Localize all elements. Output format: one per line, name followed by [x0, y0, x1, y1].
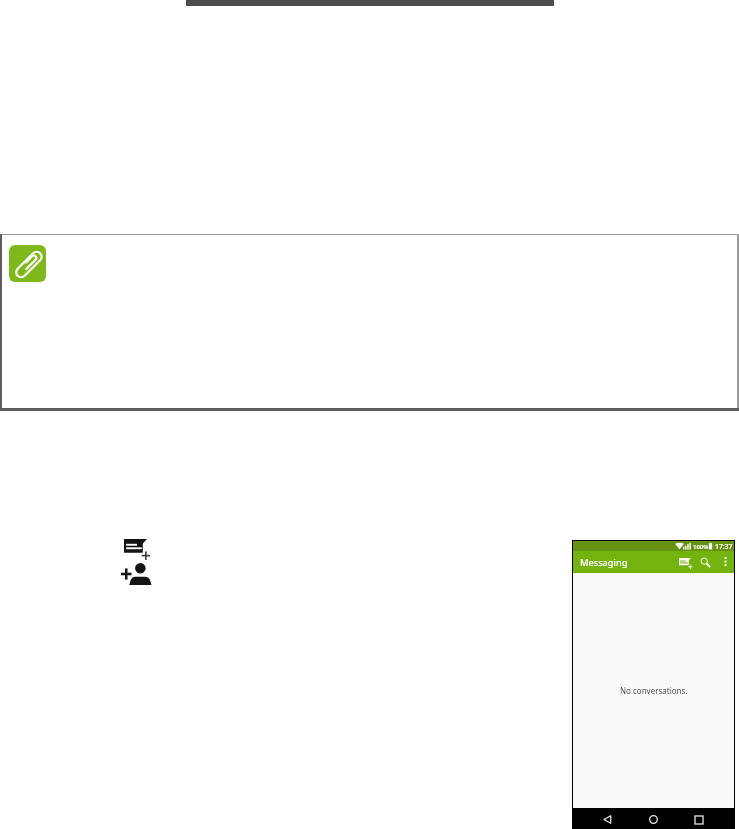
staticText: 17:37 — [715, 542, 733, 551]
staticText: Messaging — [580, 556, 628, 569]
button[interactable]: More options — [718, 554, 732, 568]
button[interactable]: Recents — [692, 813, 705, 826]
button[interactable]: New message — [124, 539, 149, 558]
staticText: 100% — [693, 543, 709, 551]
button[interactable]: Home — [647, 813, 660, 826]
button[interactable]: Add person — [121, 563, 151, 585]
button[interactable]: Search — [697, 554, 713, 570]
button[interactable]: New message — [676, 554, 694, 571]
staticText: No conversations. — [620, 685, 688, 696]
button[interactable]: Back — [601, 813, 614, 826]
